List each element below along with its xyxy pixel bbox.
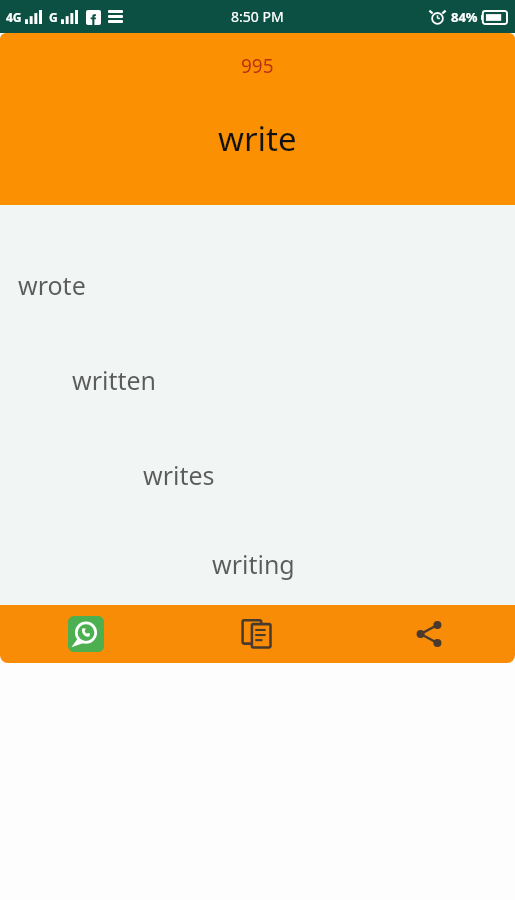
- button[interactable]: written: [0, 332, 515, 427]
- button[interactable]: Copy: [171, 605, 343, 663]
- staticText: 4G: [6, 9, 22, 25]
- staticText: write: [218, 116, 297, 161]
- staticText: written: [72, 363, 157, 397]
- staticText: 8:50 PM: [231, 7, 284, 26]
- staticText: writing: [212, 547, 295, 581]
- staticText: 84%: [451, 8, 478, 26]
- button[interactable]: writing: [0, 522, 515, 605]
- button[interactable]: Share on WhatsApp: [0, 605, 171, 663]
- staticText: G: [49, 9, 58, 25]
- button[interactable]: writes: [0, 427, 515, 522]
- staticText: 995: [241, 53, 274, 79]
- staticText: wrote: [18, 268, 86, 302]
- button[interactable]: wrote: [0, 237, 515, 332]
- staticText: writes: [143, 458, 215, 492]
- button[interactable]: Share: [343, 605, 515, 663]
